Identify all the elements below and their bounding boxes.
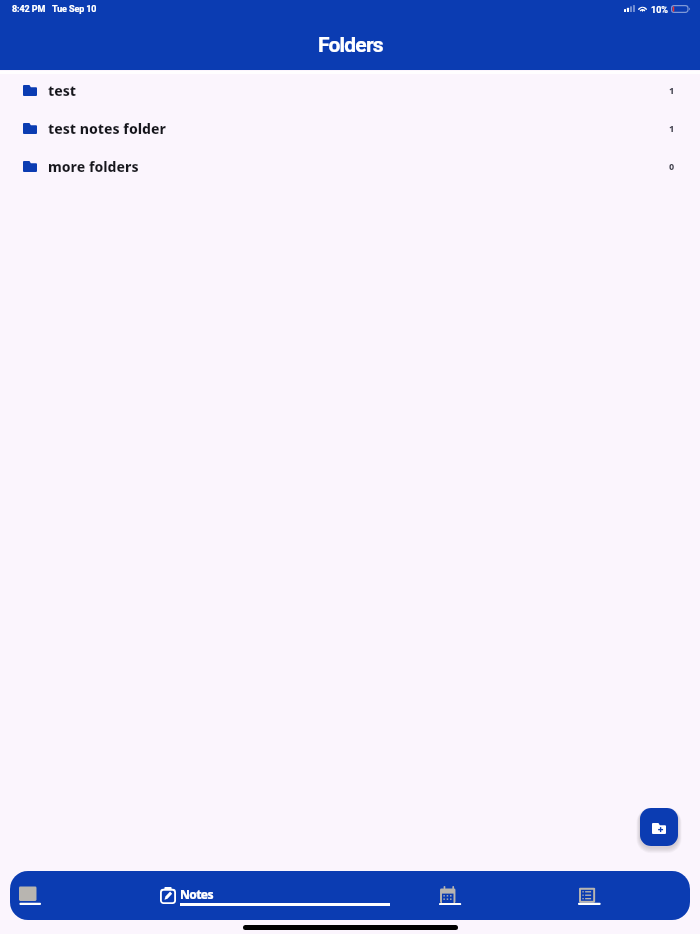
staticText: 10% xyxy=(651,5,668,16)
button[interactable]: test notes folder xyxy=(0,109,700,147)
staticText: 1 xyxy=(669,84,675,96)
button[interactable]: Agenda xyxy=(568,878,616,913)
staticText: 1 xyxy=(669,122,675,134)
button[interactable]: Calendar xyxy=(428,878,476,913)
staticText: 0 xyxy=(669,160,675,172)
button[interactable]: Notes xyxy=(160,878,213,913)
button[interactable]: more folders xyxy=(0,147,700,185)
staticText: more folders xyxy=(48,157,139,176)
button[interactable]: test xyxy=(0,71,700,109)
staticText: test xyxy=(48,81,77,100)
staticText: test notes folder xyxy=(48,119,166,138)
button[interactable]: Home xyxy=(10,878,60,913)
button[interactable]: Create new folder xyxy=(640,808,678,846)
staticText: Notes xyxy=(180,886,213,902)
staticText: 8:42 PM xyxy=(12,4,46,15)
staticText: Folders xyxy=(318,33,383,58)
staticText: Tue Sep 10 xyxy=(52,4,97,15)
